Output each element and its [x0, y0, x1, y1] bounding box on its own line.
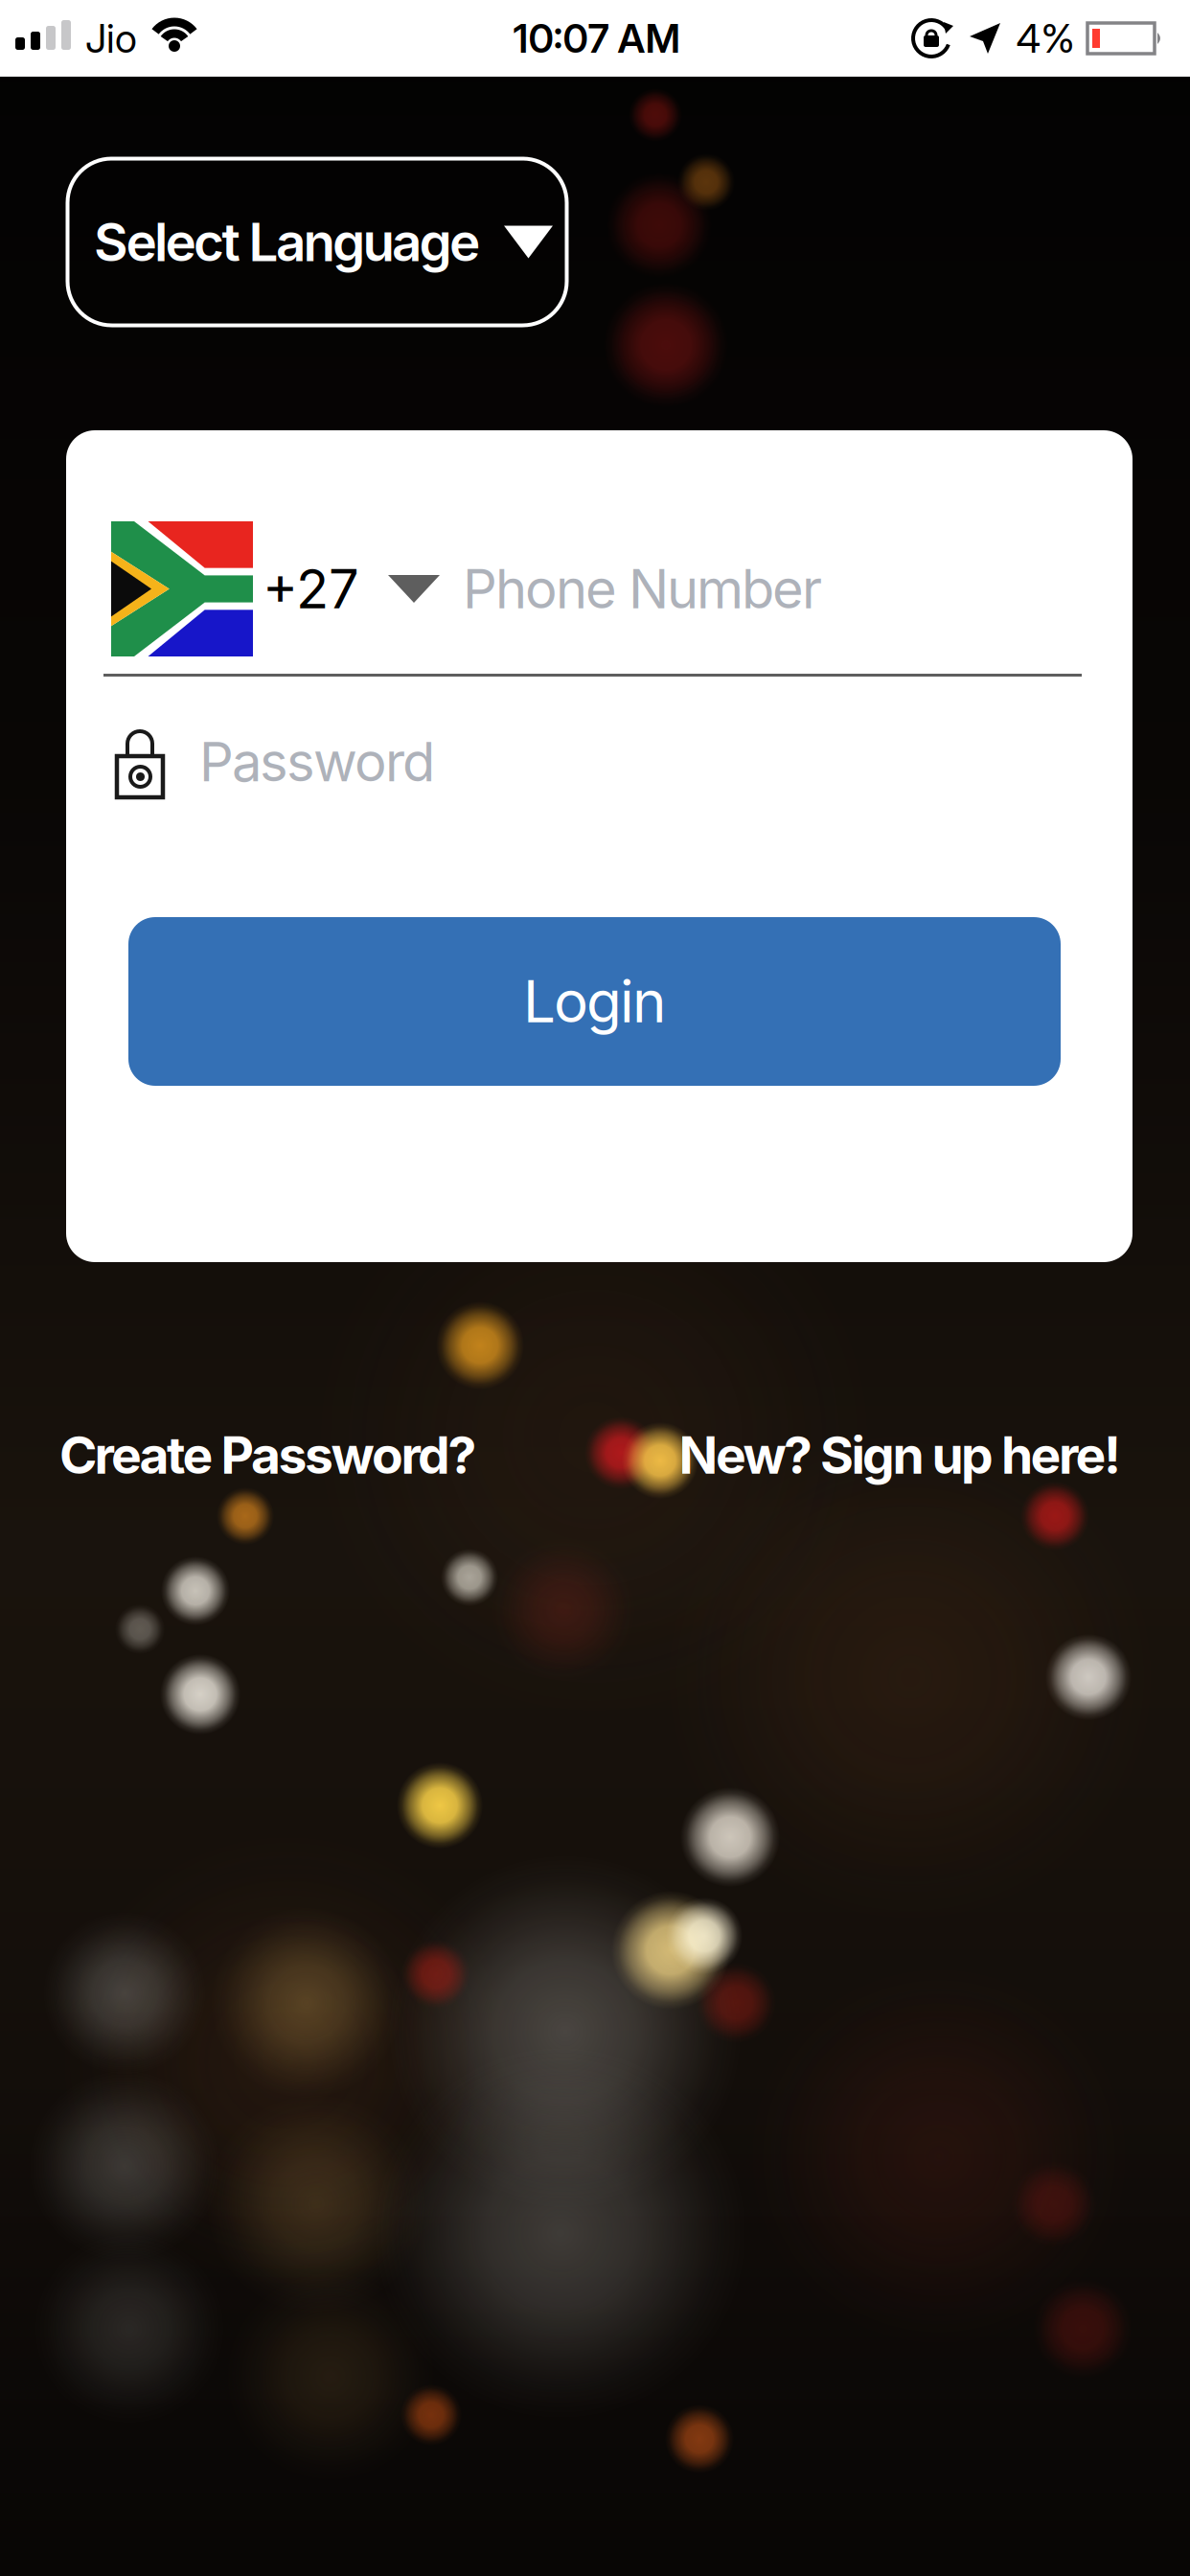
staticText: +27: [263, 557, 359, 621]
button[interactable]: Create Password?: [59, 1425, 477, 1485]
button[interactable]: Password: [66, 724, 1133, 799]
staticText: Select Language: [94, 211, 480, 273]
staticText: Login: [523, 968, 666, 1035]
staticText: Password: [199, 730, 435, 794]
staticText: Jio: [85, 15, 137, 62]
staticText: Create Password?: [59, 1425, 477, 1485]
button[interactable]: Select Language: [65, 156, 569, 328]
button[interactable]: Login: [128, 917, 1061, 1086]
staticText: 4%: [1016, 15, 1075, 62]
button[interactable]: Country code +27, South Africa: [111, 521, 440, 656]
staticText: Phone Number: [463, 557, 822, 621]
staticText: 10:07 AM: [513, 15, 681, 62]
button[interactable]: New? Sign up here!: [679, 1425, 1121, 1485]
staticText: New? Sign up here!: [679, 1425, 1121, 1485]
button[interactable]: Phone Number: [440, 557, 822, 621]
